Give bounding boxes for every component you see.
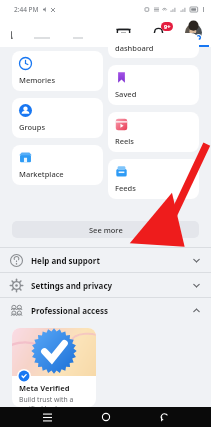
staticText: Help and support (31, 255, 100, 266)
button[interactable]: Groups (12, 98, 103, 138)
button[interactable]: Professional access (0, 298, 211, 322)
button[interactable]: Meta Verified (12, 328, 96, 407)
staticText: Memories (19, 75, 56, 85)
other: Expand (192, 281, 201, 290)
other: Expand (192, 306, 201, 315)
button[interactable]: Home (0, 18, 36, 47)
staticText: Marketplace (19, 169, 64, 179)
button[interactable]: Home (95, 407, 117, 427)
staticText: Settings and privacy (31, 280, 113, 291)
button[interactable]: Saved (108, 65, 199, 105)
button[interactable]: Video (36, 18, 71, 47)
staticText: Feeds (115, 183, 136, 193)
button[interactable]: Profile menu (176, 18, 211, 47)
staticText: Groups (19, 122, 46, 132)
button[interactable]: See more (12, 221, 199, 238)
staticText: dashboard (115, 43, 154, 53)
button[interactable]: Settings and privacy (0, 273, 211, 297)
button[interactable]: Help and support (0, 248, 211, 272)
staticText: Build trust with a verified badge. (19, 395, 74, 407)
button[interactable]: Friends (71, 18, 106, 47)
button[interactable]: Back (153, 407, 175, 427)
button[interactable]: Memories (12, 51, 103, 91)
staticText: Meta Verified (19, 383, 70, 393)
button[interactable]: Recent apps (36, 407, 58, 427)
button[interactable]: Reels (108, 112, 199, 152)
button[interactable]: Feeds (108, 159, 199, 199)
button[interactable]: Marketplace (12, 145, 103, 185)
staticText: Saved (115, 89, 137, 99)
button[interactable]: dashboard (108, 33, 199, 58)
staticText: Reels (115, 136, 135, 146)
button[interactable]: Notifications (141, 18, 176, 47)
staticText: 9+ (164, 23, 171, 30)
staticText: 2:44 PM (14, 5, 39, 14)
other: Expand (192, 256, 201, 265)
button[interactable]: Marketplace (106, 18, 141, 47)
staticText: See more (89, 225, 123, 235)
button[interactable] (12, 22, 103, 44)
staticText: Professional access (31, 305, 108, 316)
